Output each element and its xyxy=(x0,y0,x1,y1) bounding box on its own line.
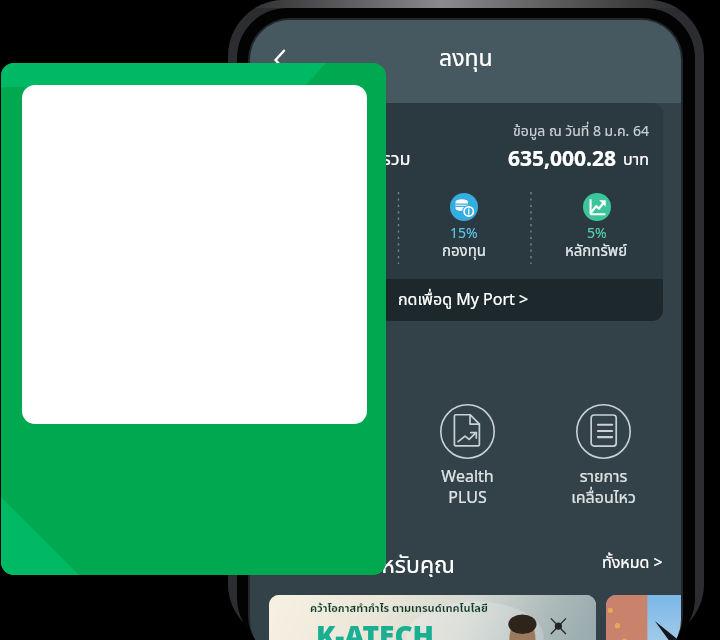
button[interactable]: 15% xyxy=(397,186,530,279)
staticText: มูลค่าทรัพย์สินรวม xyxy=(278,146,411,173)
button[interactable]: กดเพื่อดู My Port > xyxy=(264,279,663,321)
staticText: ผลิตภัณฑ์สำหรับคุณ xyxy=(267,549,455,577)
staticText: ลงทุน xyxy=(439,42,493,77)
staticText: หลักทรัพย์ xyxy=(565,240,628,263)
button[interactable] xyxy=(1,63,386,575)
button[interactable]: คว้าโอกาสทำกำไร ตามเทรนด์เทคโนโลยี xyxy=(269,595,596,640)
staticText: 5% xyxy=(587,223,607,244)
button[interactable]: Back xyxy=(258,38,302,82)
button[interactable]: Wealth PLUS xyxy=(412,404,523,510)
staticText: รายการ เคลื่อนไหว xyxy=(571,465,636,510)
staticText: คว้าโอกาสทำกำไร ตามเทรนด์เทคโนโลยี xyxy=(310,600,488,617)
staticText: บาท xyxy=(623,148,649,172)
button[interactable]: 25% xyxy=(264,186,397,279)
staticText: 635,000.28 xyxy=(508,144,617,176)
button[interactable]: ออมทอง xyxy=(276,404,387,489)
staticText: ข้อมูล ณ วันที่ 8 ม.ค. 64 xyxy=(513,121,649,142)
staticText: Wealth PLUS xyxy=(441,465,494,510)
staticText: K-ATECH xyxy=(316,616,435,640)
button[interactable]: ข้อมูล ณ วันที่ 8 ม.ค. 64 xyxy=(264,103,663,321)
staticText: 15% xyxy=(450,223,478,244)
button[interactable]: รายการ เคลื่อนไหว xyxy=(548,404,659,510)
button[interactable] xyxy=(606,595,681,640)
staticText: กองทุน xyxy=(442,240,486,263)
staticText: กดเพื่อดู My Port > xyxy=(398,288,529,312)
button[interactable]: 5% xyxy=(530,186,663,279)
button[interactable]: ทั้งหมด > xyxy=(602,551,663,575)
